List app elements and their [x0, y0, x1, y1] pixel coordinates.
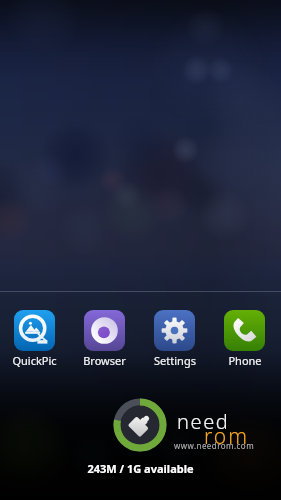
button[interactable]: Settings: [139, 310, 210, 368]
staticText: Phone: [228, 353, 262, 368]
staticText: www.needrom.com: [174, 440, 255, 451]
staticText: rom: [204, 422, 249, 451]
staticText: Browser: [83, 353, 126, 368]
button[interactable]: Browser: [69, 310, 140, 368]
staticText: Settings: [154, 353, 196, 368]
staticText: 243M / 1G available: [87, 461, 194, 476]
staticText: QuickPic: [12, 353, 57, 368]
button[interactable]: Phone: [209, 310, 280, 368]
button[interactable]: QuickPic: [0, 310, 70, 368]
button[interactable]: need: [172, 410, 272, 452]
button[interactable]: Clean memory: [112, 397, 168, 453]
staticText: need: [177, 408, 230, 435]
